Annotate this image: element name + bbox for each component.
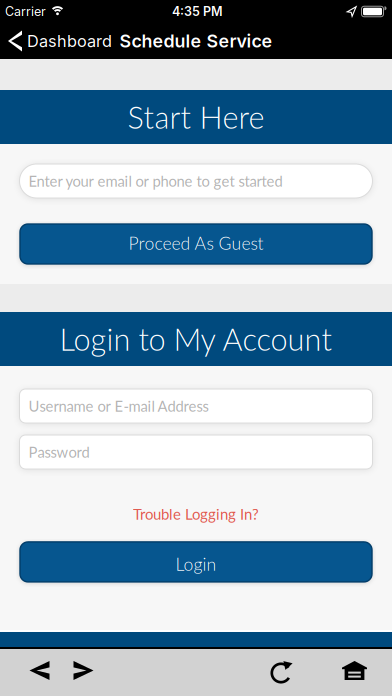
staticText: Schedule Service bbox=[119, 30, 272, 52]
staticText: Password bbox=[28, 443, 89, 461]
staticText: Trouble Logging In? bbox=[133, 505, 259, 523]
staticText: Start Here bbox=[127, 99, 264, 135]
staticText: Username or E-mail Address bbox=[28, 397, 208, 415]
button[interactable]: Forward bbox=[49, 661, 93, 680]
button[interactable]: Reload bbox=[271, 659, 342, 682]
button[interactable]: Back bbox=[0, 661, 49, 680]
staticText: Login bbox=[175, 553, 216, 574]
button[interactable]: Proceed As Guest bbox=[20, 224, 372, 264]
staticText: Proceed As Guest bbox=[128, 232, 263, 253]
button[interactable]: Login bbox=[20, 542, 372, 582]
staticText: 4:35 PM bbox=[172, 4, 223, 19]
button[interactable]: Home bbox=[342, 661, 392, 680]
button[interactable]: Trouble Logging In? bbox=[133, 505, 259, 523]
staticText: Login to My Account bbox=[59, 321, 332, 357]
button[interactable]: Back to Dashboard bbox=[0, 30, 112, 51]
staticText: Carrier bbox=[5, 4, 46, 19]
staticText: Enter your email or phone to get started bbox=[28, 172, 282, 190]
staticText: Dashboard bbox=[27, 31, 112, 51]
